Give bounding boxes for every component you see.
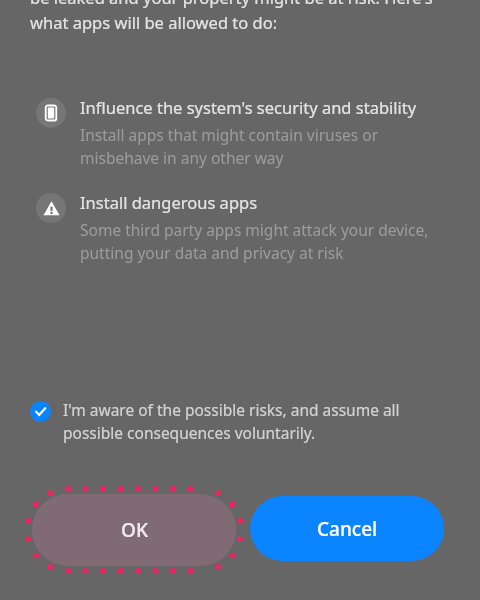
button[interactable]: Cancel [250, 496, 444, 561]
staticText: Install dangerous apps [80, 191, 258, 213]
staticText: Cancel [317, 516, 378, 542]
staticText: I'm aware of the possible risks, and ass… [63, 399, 456, 444]
staticText: Influence the system's security and stab… [80, 96, 417, 118]
other: Warning [43, 200, 60, 217]
staticText: OK [121, 517, 148, 543]
staticText: Install apps that might contain viruses … [80, 124, 452, 169]
staticText: Some third party apps might attack your … [80, 219, 452, 264]
other: Device security [43, 105, 59, 121]
button[interactable]: Device security [0, 94, 480, 171]
button[interactable]: Warning [0, 189, 480, 266]
button[interactable]: OK [22, 484, 246, 576]
button[interactable]: I'm aware of the possible risks, and ass… [0, 393, 480, 450]
staticText: be leaked and your property might be at … [30, 0, 456, 34]
